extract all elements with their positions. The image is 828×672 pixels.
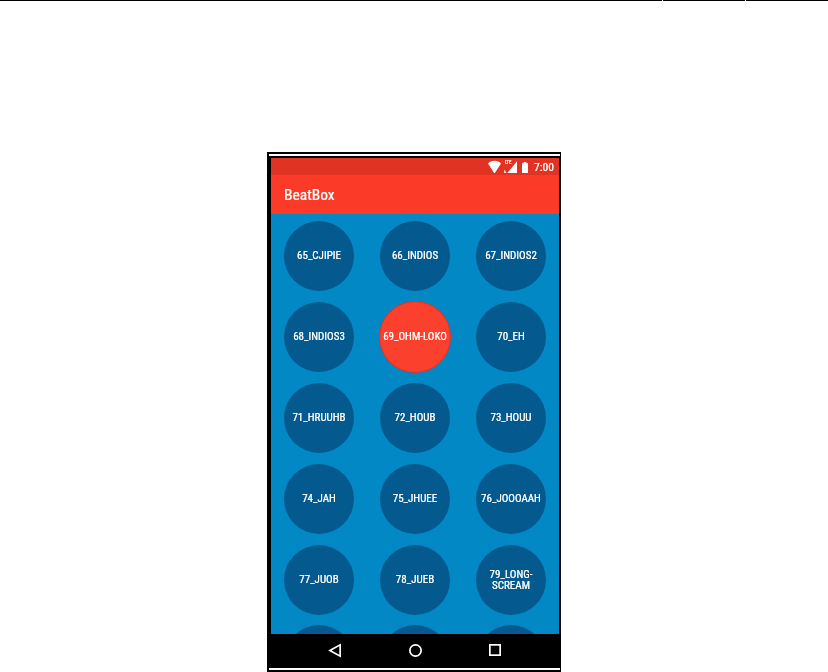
staticText: 75_JHUEE — [381, 492, 449, 505]
button[interactable]: BeatBox — [271, 175, 559, 214]
staticText: 69_OHM-LOKO — [381, 330, 449, 343]
staticText: LTE — [505, 160, 512, 165]
button[interactable]: 79_LONG-SCREAM — [463, 539, 559, 620]
button[interactable]: Back — [313, 633, 357, 667]
staticText: 78_JUEB — [381, 573, 449, 586]
staticText: 76_JOOOAAH — [477, 492, 545, 505]
staticText: 74_JAH — [285, 492, 353, 505]
button[interactable]: Home — [393, 633, 437, 667]
staticText: 73_HOUU — [477, 411, 545, 424]
staticText: 70_EH — [477, 330, 545, 343]
button[interactable]: 81_BBB — [367, 620, 463, 635]
staticText: 79_LONG-SCREAM — [477, 568, 545, 591]
button[interactable]: 67_INDIOS2 — [463, 215, 559, 296]
staticText: 65_CJIPIE — [285, 249, 353, 262]
button[interactable]: 76_JOOOAAH — [463, 458, 559, 539]
button[interactable]: Recent apps — [473, 633, 517, 667]
button[interactable]: 66_INDIOS — [367, 215, 463, 296]
staticText: 77_JUOB — [285, 573, 353, 586]
button[interactable]: 74_JAH — [271, 458, 367, 539]
button[interactable]: 78_JUEB — [367, 539, 463, 620]
staticText: BeatBox — [284, 186, 335, 204]
staticText: 66_INDIOS — [381, 249, 449, 262]
button[interactable]: 72_HOUB — [367, 377, 463, 458]
staticText: 72_HOUB — [381, 411, 449, 424]
button[interactable]: 70_EH — [463, 296, 559, 377]
button[interactable]: 68_INDIOS3 — [271, 296, 367, 377]
staticText: 7:00 — [534, 160, 554, 174]
staticText: 67_INDIOS2 — [477, 249, 545, 262]
button[interactable]: 82_CCC — [463, 620, 559, 635]
button[interactable]: 77_JUOB — [271, 539, 367, 620]
button[interactable]: 71_HRUUHB — [271, 377, 367, 458]
button[interactable]: 75_JHUEE — [367, 458, 463, 539]
staticText: 68_INDIOS3 — [285, 330, 353, 343]
button[interactable]: 80_AAA — [271, 620, 367, 635]
button[interactable]: 65_CJIPIE — [271, 215, 367, 296]
button[interactable]: 73_HOUU — [463, 377, 559, 458]
button[interactable]: 69_OHM-LOKO — [367, 296, 463, 377]
staticText: 71_HRUUHB — [285, 411, 353, 424]
